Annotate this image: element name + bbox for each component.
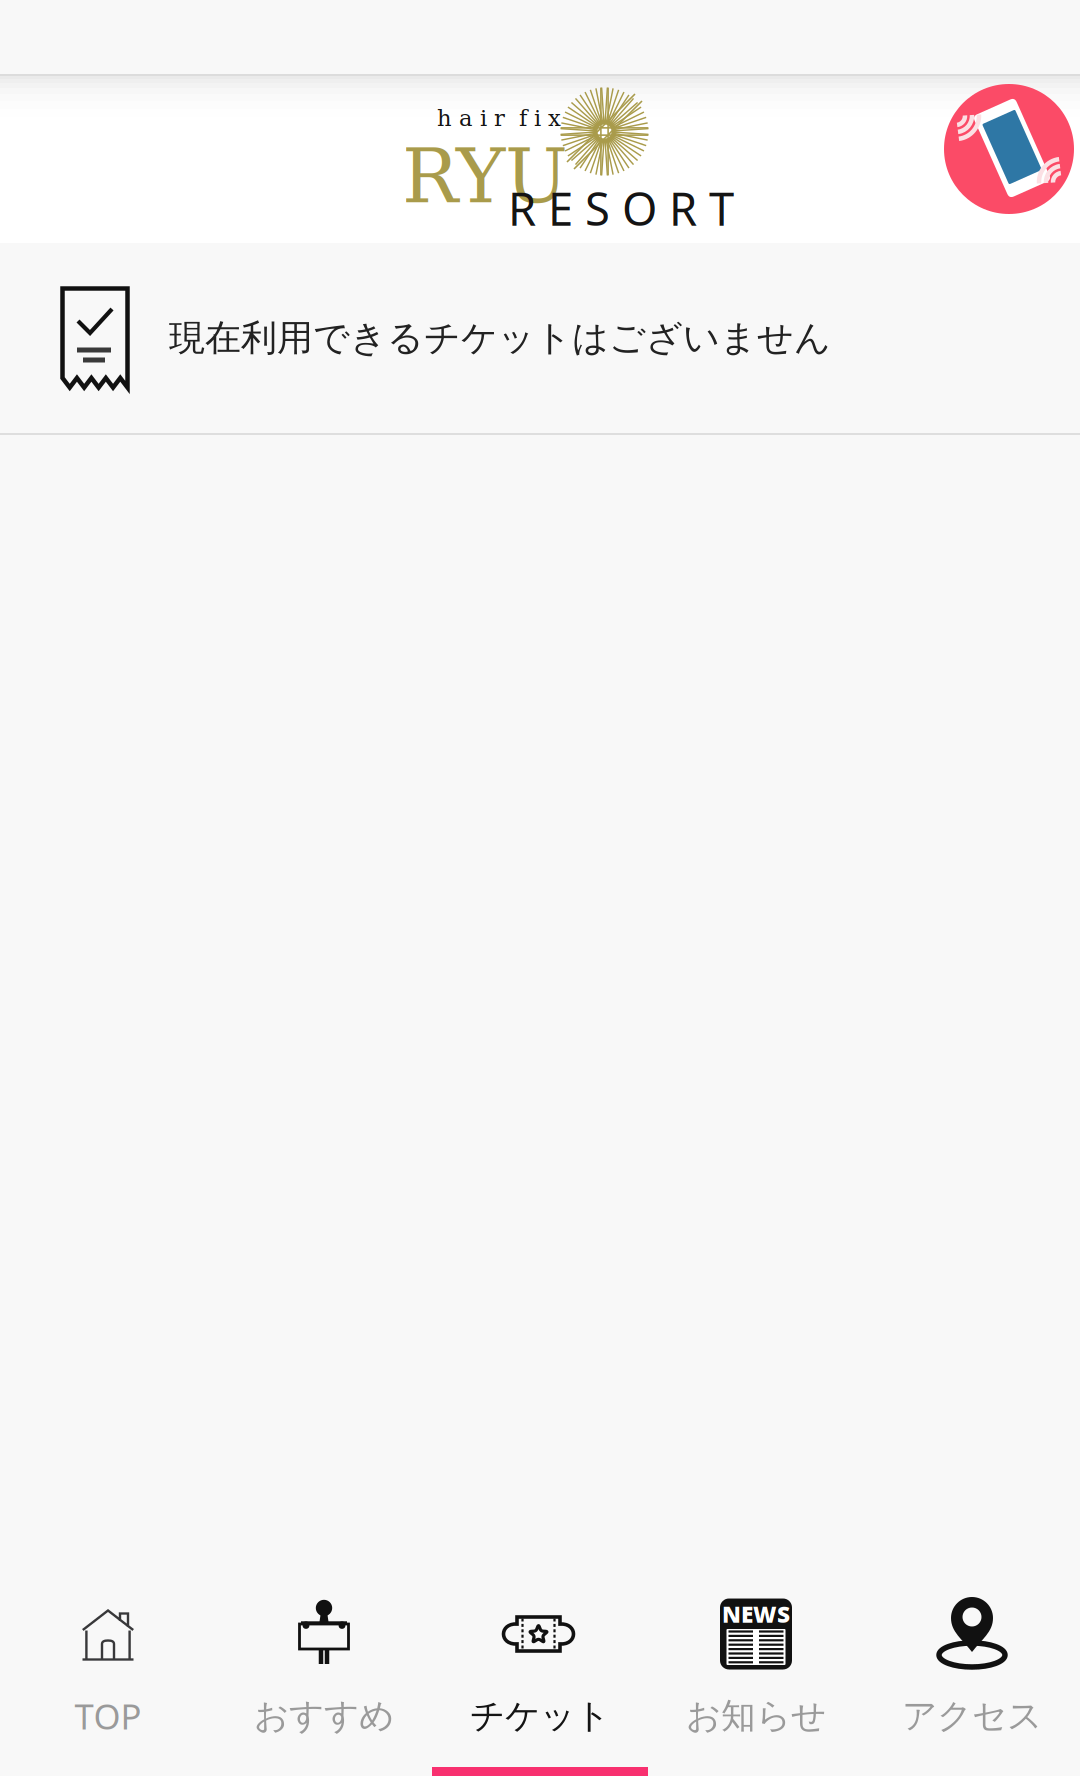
button[interactable]: NEWS	[648, 1586, 864, 1776]
staticText: 現在利用できるチケットはございません	[169, 316, 831, 360]
staticText: h a i r f i x	[437, 105, 561, 131]
staticText: おすすめ	[254, 1695, 394, 1737]
staticText: チケット	[470, 1695, 610, 1737]
staticText: TOP	[74, 1693, 141, 1739]
staticText: RYU	[402, 133, 568, 220]
button[interactable]: おすすめ	[216, 1586, 432, 1776]
button[interactable]: アクセス	[864, 1586, 1080, 1776]
button[interactable]: チケット	[432, 1586, 648, 1776]
button[interactable]: Shake to call	[944, 84, 1074, 214]
button[interactable]: TOP	[0, 1586, 216, 1776]
staticText: アクセス	[902, 1695, 1042, 1737]
staticText: NEWS	[722, 1599, 790, 1629]
staticText: R E S O R T	[508, 178, 734, 238]
staticText: お知らせ	[686, 1695, 826, 1737]
